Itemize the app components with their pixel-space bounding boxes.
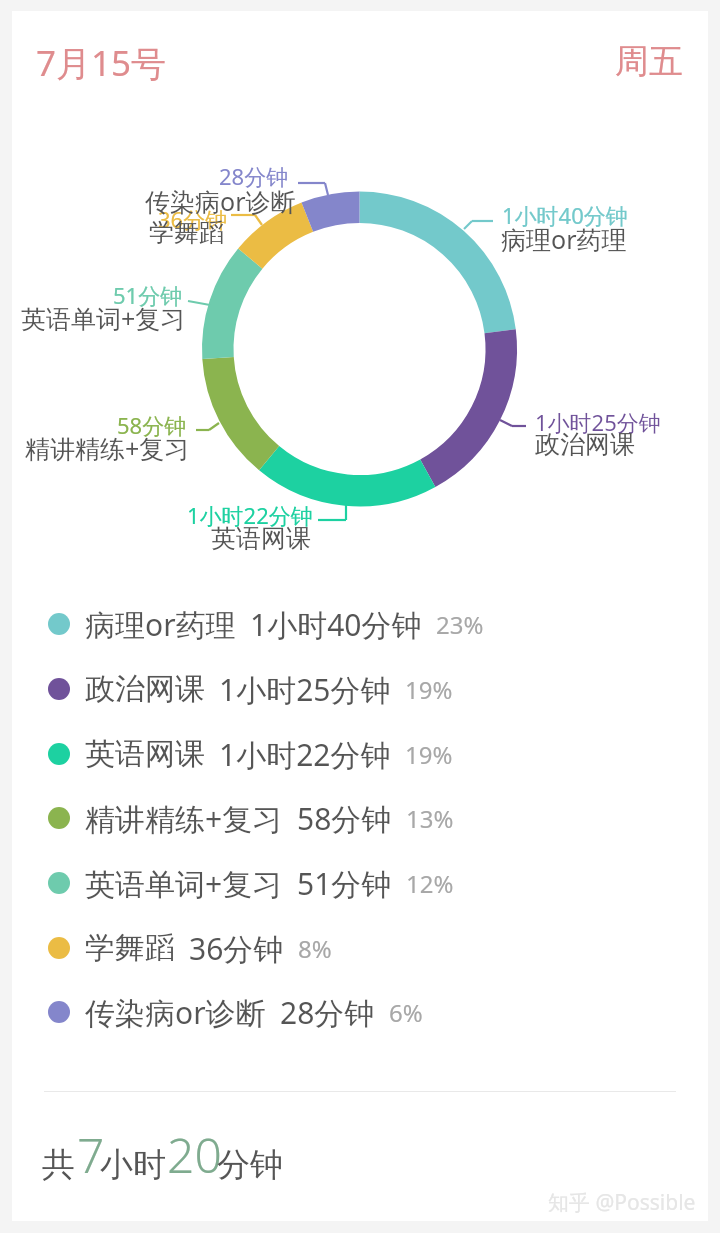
staticText: 58分钟: [297, 798, 392, 839]
staticText: 学舞蹈: [149, 217, 224, 248]
staticText: 58分钟: [117, 410, 187, 440]
staticText: 51分钟: [297, 863, 392, 904]
staticText: 7: [77, 1122, 105, 1187]
staticText: 12%: [406, 867, 454, 900]
staticText: 19%: [405, 738, 453, 771]
staticText: 6%: [389, 996, 423, 1029]
button[interactable]: 7月15号: [36, 39, 167, 87]
staticText: 1小时25分钟: [219, 669, 391, 710]
button[interactable]: 英语单词+复习: [48, 857, 454, 909]
staticText: 1小时22分钟: [187, 500, 313, 530]
staticText: 1小时40分钟: [250, 604, 422, 645]
staticText: 19%: [405, 673, 453, 706]
staticText: 政治网课: [535, 429, 635, 460]
button[interactable]: 政治网课: [48, 663, 453, 715]
staticText: 23%: [436, 608, 484, 641]
staticText: 分钟: [217, 1144, 283, 1186]
staticText: 20: [167, 1122, 222, 1187]
staticText: 学舞蹈: [85, 929, 175, 967]
staticText: 传染病or诊断: [145, 184, 296, 218]
staticText: 共: [42, 1144, 75, 1186]
staticText: 英语单词+复习: [85, 863, 283, 904]
staticText: 1小时22分钟: [219, 734, 391, 775]
staticText: 精讲精练+复习: [25, 431, 190, 465]
staticText: 精讲精练+复习: [85, 798, 283, 839]
staticText: 28分钟: [280, 992, 375, 1033]
staticText: 36分钟: [189, 928, 284, 969]
staticText: 36分钟: [158, 204, 228, 234]
button[interactable]: 病理or药理: [48, 598, 484, 650]
staticText: 英语网课: [211, 523, 311, 554]
button[interactable]: 精讲精练+复习: [48, 792, 454, 844]
staticText: 传染病or诊断: [85, 992, 266, 1033]
staticText: 英语网课: [85, 735, 205, 773]
button[interactable]: 周五: [615, 40, 683, 83]
button[interactable]: 学舞蹈: [48, 922, 332, 974]
button[interactable]: 传染病or诊断: [48, 986, 423, 1038]
staticText: 病理or药理: [85, 604, 236, 645]
staticText: 51分钟: [113, 280, 183, 310]
button[interactable]: 英语网课: [48, 728, 453, 780]
staticText: 28分钟: [219, 161, 289, 191]
staticText: 政治网课: [85, 670, 205, 708]
staticText: 知乎 @Possible: [548, 1188, 696, 1217]
staticText: 13%: [406, 802, 454, 835]
staticText: 1小时25分钟: [535, 407, 661, 437]
staticText: 8%: [298, 932, 332, 965]
staticText: 1小时40分钟: [502, 200, 628, 230]
button[interactable]: 共: [40, 1120, 300, 1190]
staticText: 病理or药理: [501, 222, 627, 256]
staticText: 小时: [100, 1144, 166, 1186]
staticText: 英语单词+复习: [21, 301, 186, 335]
